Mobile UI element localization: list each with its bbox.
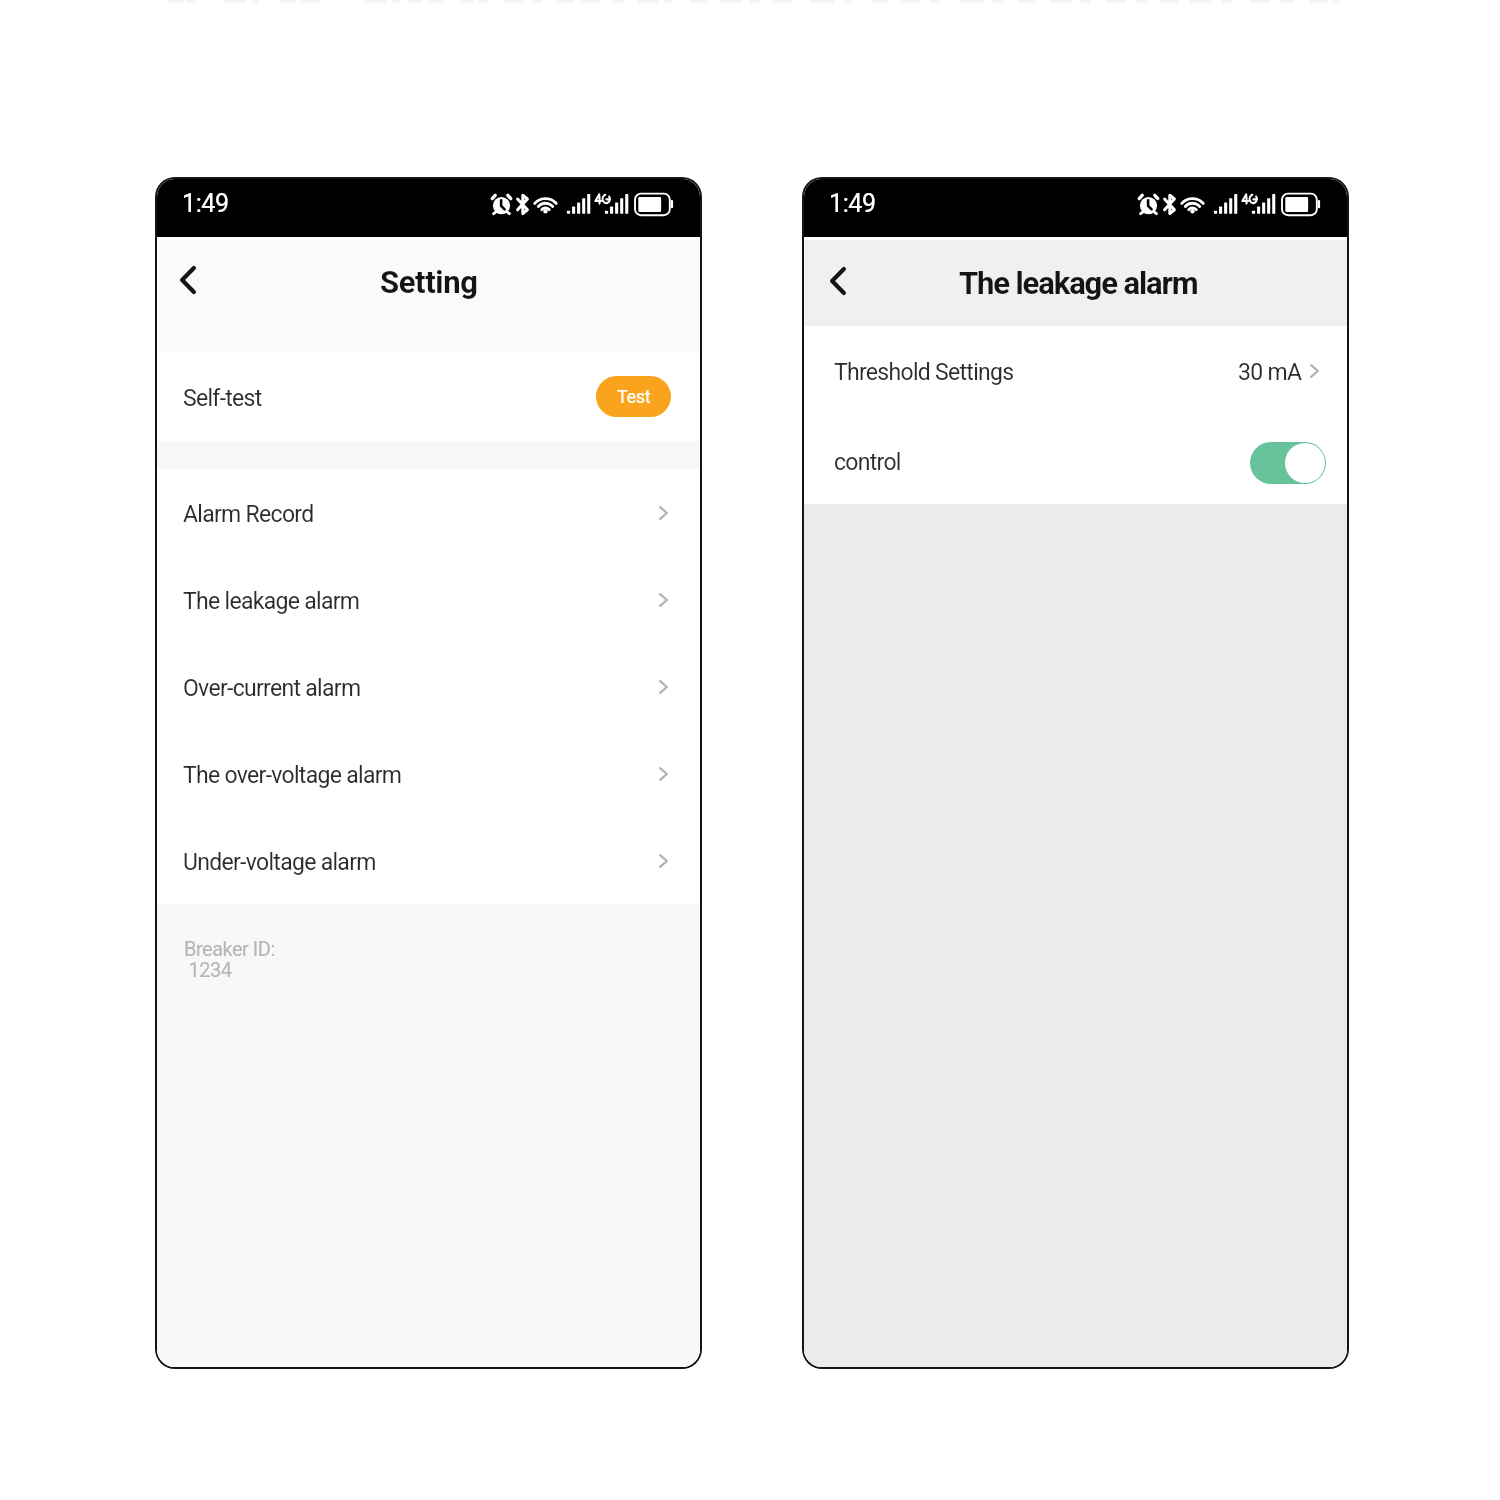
button[interactable]: The leakage alarm	[157, 556, 700, 643]
staticText: Test	[617, 386, 651, 407]
staticText: Threshold Settings	[834, 359, 1014, 386]
button[interactable]: Test	[596, 376, 671, 417]
staticText: The leakage alarm	[183, 588, 360, 615]
button[interactable]: Back	[159, 251, 217, 309]
button[interactable]: Self-test	[157, 351, 700, 441]
staticText: Setting	[380, 264, 478, 300]
button[interactable]: The over-voltage alarm	[157, 730, 700, 817]
button[interactable]: Over-current alarm	[157, 643, 700, 730]
button[interactable]: Threshold Settings	[804, 326, 1347, 415]
staticText: Over-current alarm	[183, 675, 361, 702]
staticText: 30 mA	[1238, 359, 1302, 386]
staticText: 1:49	[829, 189, 876, 218]
staticText: 1:49	[182, 189, 229, 218]
staticText: 1234	[184, 958, 232, 981]
staticText: The over-voltage alarm	[183, 762, 402, 789]
button[interactable]: control toggle	[1250, 442, 1326, 484]
button[interactable]: Alarm Record	[157, 469, 700, 556]
staticText: Breaker ID:	[184, 937, 275, 960]
button[interactable]: Back	[809, 252, 867, 310]
staticText: Self-test	[183, 385, 262, 412]
staticText: Alarm Record	[183, 501, 314, 528]
button[interactable]: control	[804, 415, 1347, 504]
staticText: The leakage alarm	[959, 265, 1198, 301]
staticText: control	[834, 449, 901, 476]
staticText: Under-voltage alarm	[183, 849, 376, 876]
button[interactable]: Under-voltage alarm	[157, 817, 700, 904]
